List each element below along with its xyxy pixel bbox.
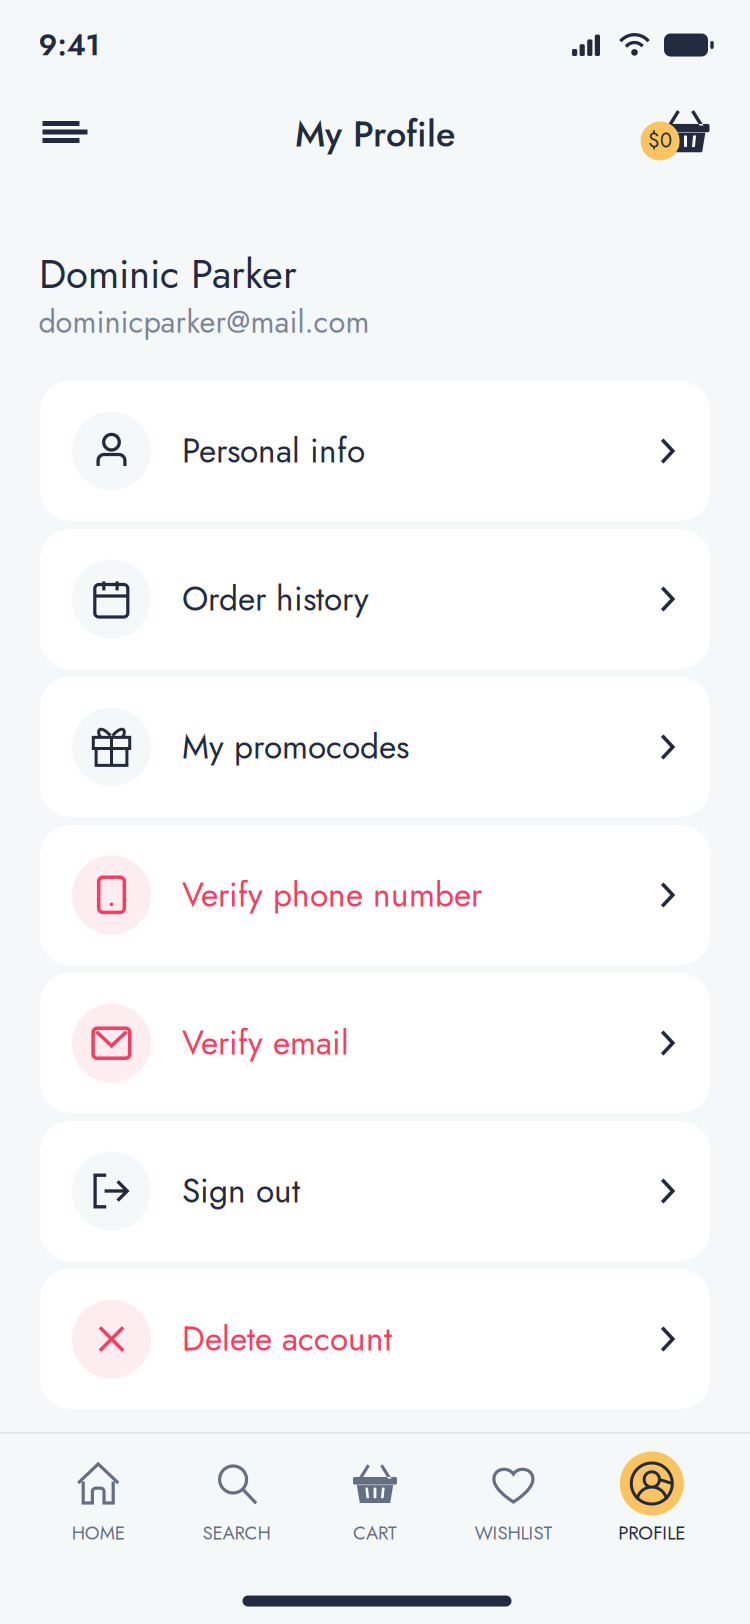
staticText: Order history (182, 575, 369, 623)
button[interactable]: Delete account (40, 1269, 710, 1409)
button[interactable]: Sign out (40, 1121, 710, 1261)
button[interactable]: Cart, $0 (620, 103, 710, 159)
button[interactable]: PROFILE (583, 1451, 721, 1546)
staticText: $0 (648, 126, 672, 155)
staticText: WISHLIST (474, 1519, 552, 1546)
button[interactable]: CART (306, 1451, 444, 1546)
button[interactable]: Menu (30, 101, 100, 163)
staticText: HOME (72, 1519, 125, 1546)
button[interactable]: My Profile (250, 106, 500, 162)
staticText: My Profile (295, 108, 455, 160)
button[interactable]: Personal info (40, 381, 710, 521)
button[interactable]: Verify phone number (40, 825, 710, 965)
button[interactable]: HOME (29, 1451, 167, 1546)
staticText: Verify email (182, 1019, 349, 1067)
staticText: dominicparker@mail.com (38, 300, 369, 344)
staticText: CART (353, 1519, 397, 1546)
button[interactable]: Order history (40, 529, 710, 669)
staticText: Dominic Parker (39, 245, 297, 303)
button[interactable]: My promocodes (40, 677, 710, 817)
button[interactable]: SEARCH (167, 1451, 306, 1546)
staticText: 9:41 (38, 24, 99, 66)
button[interactable]: Verify email (40, 973, 710, 1113)
staticText: Delete account (182, 1315, 392, 1363)
staticText: Verify phone number (182, 871, 482, 919)
staticText: My promocodes (182, 723, 409, 771)
staticText: SEARCH (203, 1519, 271, 1546)
staticText: Personal info (182, 427, 365, 475)
button[interactable]: WISHLIST (444, 1451, 583, 1546)
staticText: Sign out (182, 1167, 300, 1215)
staticText: PROFILE (618, 1519, 685, 1546)
